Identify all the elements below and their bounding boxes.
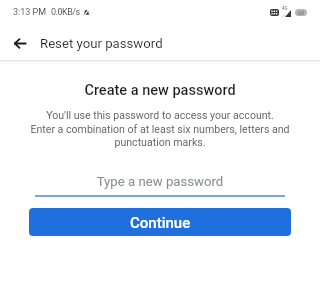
staticText: 69 [298, 10, 305, 16]
button[interactable]: Back [6, 29, 34, 57]
staticText: 0.0KB/s [51, 7, 80, 18]
staticText: Reset your password [40, 36, 163, 51]
staticText: 3:13 PM [13, 7, 47, 18]
staticText: 4G [282, 6, 288, 11]
staticText: Type a new password [35, 174, 285, 189]
button[interactable]: Continue [29, 208, 291, 236]
staticText: You'll use this password to access your … [14, 109, 306, 148]
staticText: Create a new password [0, 82, 320, 99]
staticText: Continue [130, 214, 191, 232]
button[interactable]: Type a new password [35, 172, 285, 197]
